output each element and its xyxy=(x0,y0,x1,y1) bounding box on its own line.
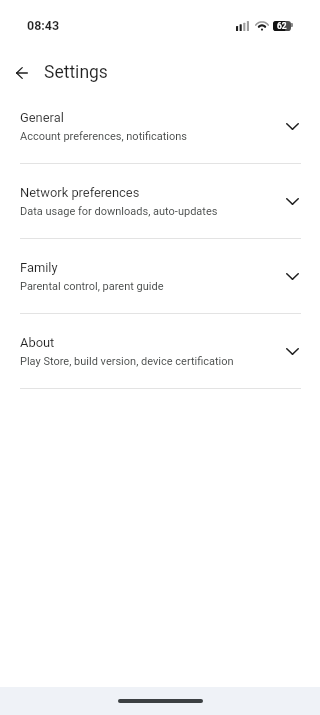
staticText: Family xyxy=(20,260,58,275)
staticText: About xyxy=(20,335,55,350)
button[interactable]: Back xyxy=(4,55,40,91)
staticText: Network preferences xyxy=(20,185,140,200)
staticText: Settings xyxy=(44,62,108,83)
staticText: 62 xyxy=(277,21,287,31)
button[interactable]: About xyxy=(0,314,320,389)
staticText: General xyxy=(20,110,64,125)
staticText: Data usage for downloads, auto-updates xyxy=(20,205,218,218)
staticText: Play Store, build version, device certif… xyxy=(20,355,234,368)
button[interactable]: Network preferences xyxy=(0,164,320,239)
staticText: Account preferences, notifications xyxy=(20,130,188,143)
button[interactable]: Family xyxy=(0,239,320,314)
button[interactable]: General xyxy=(0,89,320,164)
staticText: Parental control, parent guide xyxy=(20,280,164,293)
staticText: 08:43 xyxy=(27,18,60,33)
